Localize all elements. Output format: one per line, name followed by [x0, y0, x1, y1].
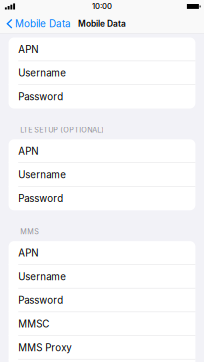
- staticText: Username: [18, 169, 66, 181]
- staticText: APN: [18, 145, 38, 157]
- staticText: APN: [18, 43, 38, 55]
- button[interactable]: APN: [9, 241, 195, 265]
- staticText: LTE SETUP (OPTIONAL): [20, 126, 104, 134]
- staticText: Username: [18, 271, 66, 282]
- staticText: MMS: [20, 227, 39, 236]
- button[interactable]: Password: [9, 187, 195, 210]
- button[interactable]: MMS Proxy: [9, 336, 195, 359]
- button[interactable]: Username: [9, 265, 195, 288]
- button[interactable]: Username: [9, 61, 195, 85]
- button[interactable]: APN: [9, 139, 195, 163]
- staticText: MMSC: [18, 318, 49, 330]
- staticText: 10:00: [92, 1, 112, 11]
- button[interactable]: APN: [9, 37, 195, 61]
- staticText: Mobile Data: [15, 18, 71, 30]
- staticText: Username: [18, 67, 66, 79]
- button[interactable]: Password: [9, 288, 195, 312]
- staticText: MMS Proxy: [18, 342, 71, 353]
- staticText: APN: [18, 247, 38, 259]
- button[interactable]: Mobile Data: [0, 14, 75, 33]
- staticText: Password: [18, 294, 63, 306]
- button[interactable]: Username: [9, 163, 195, 187]
- button[interactable]: MMSC: [9, 312, 195, 336]
- staticText: Password: [18, 91, 63, 103]
- staticText: Password: [18, 193, 63, 204]
- staticText: Mobile Data: [78, 19, 126, 29]
- button[interactable]: Password: [9, 85, 195, 108]
